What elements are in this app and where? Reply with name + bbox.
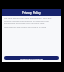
staticText: Privacy Policy [22, 11, 41, 15]
staticText: Accept and continue [20, 57, 43, 60]
staticText: We care about your data and privacy. Thi… [4, 17, 59, 24]
staticText: Information we collect and how it is use… [4, 26, 47, 29]
button[interactable]: Accept and continue [4, 56, 59, 60]
